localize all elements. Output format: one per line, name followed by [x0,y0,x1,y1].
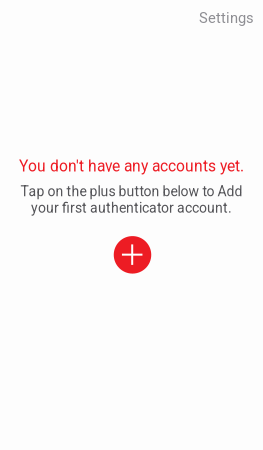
staticText: your first authenticator account. [31,200,232,216]
staticText: You don't have any accounts yet. [19,157,244,175]
staticText: Settings [199,9,254,27]
button[interactable]: Add account [114,236,151,274]
staticText: Tap on the plus button below to Add [20,183,242,200]
button[interactable]: Settings [190,1,263,35]
